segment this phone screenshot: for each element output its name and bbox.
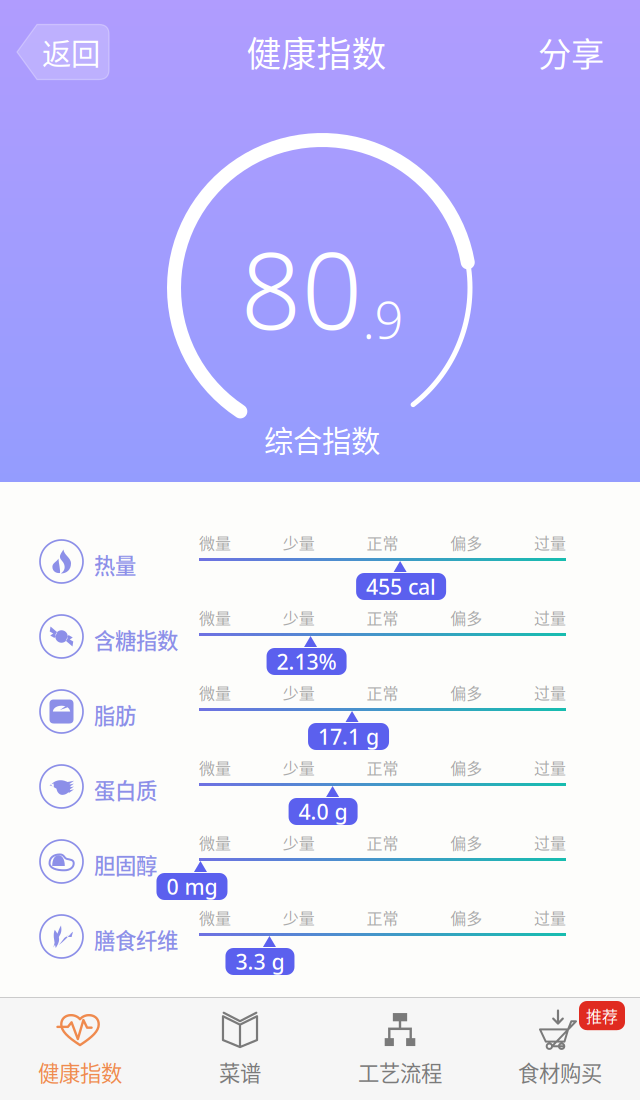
button[interactable]: 工艺流程 — [320, 998, 480, 1100]
staticText: 工艺流程 — [358, 1057, 442, 1087]
staticText: 偏多 — [450, 531, 482, 554]
staticText: 正常 — [366, 756, 398, 779]
staticText: 脂肪 — [94, 699, 136, 730]
staticText: 微量 — [199, 681, 231, 704]
staticText: 分享 — [538, 28, 604, 76]
staticText: 胆固醇 — [94, 849, 157, 880]
staticText: 4.0 g — [299, 797, 348, 826]
staticText: 偏多 — [450, 681, 482, 704]
staticText: 菜谱 — [219, 1057, 261, 1087]
staticText: 过量 — [534, 606, 566, 629]
staticText: 过量 — [534, 906, 566, 929]
staticText: 过量 — [534, 756, 566, 779]
staticText: 正常 — [366, 906, 398, 929]
staticText: 偏多 — [450, 756, 482, 779]
staticText: 正常 — [366, 681, 398, 704]
staticText: 455 cal — [366, 572, 436, 601]
staticText: 过量 — [534, 831, 566, 854]
staticText: 80 — [240, 217, 362, 359]
staticText: 少量 — [283, 531, 315, 554]
staticText: 微量 — [199, 531, 231, 554]
staticText: .9 — [362, 285, 403, 353]
staticText: 健康指数 — [38, 1057, 122, 1087]
staticText: 少量 — [283, 681, 315, 704]
staticText: 微量 — [199, 831, 231, 854]
staticText: 偏多 — [450, 831, 482, 854]
staticText: 偏多 — [450, 606, 482, 629]
staticText: 0 mg — [166, 872, 217, 901]
staticText: 食材购买 — [518, 1057, 602, 1087]
staticText: 热量 — [94, 549, 136, 580]
button[interactable]: 菜谱 — [160, 998, 320, 1100]
staticText: 偏多 — [450, 906, 482, 929]
staticText: 过量 — [534, 681, 566, 704]
staticText: 少量 — [283, 831, 315, 854]
staticText: 过量 — [534, 531, 566, 554]
staticText: 少量 — [283, 906, 315, 929]
staticText: 蛋白质 — [94, 774, 157, 805]
staticText: 推荐 — [586, 1004, 618, 1027]
staticText: 2.13% — [277, 647, 337, 676]
staticText: 少量 — [283, 606, 315, 629]
staticText: 正常 — [366, 531, 398, 554]
button[interactable]: 分享 — [524, 18, 618, 86]
staticText: 综合指数 — [264, 418, 380, 460]
button[interactable]: 健康指数 — [0, 998, 160, 1100]
staticText: 微量 — [199, 756, 231, 779]
button[interactable]: 返回 — [17, 24, 109, 79]
staticText: 返回 — [42, 31, 100, 73]
staticText: 正常 — [366, 831, 398, 854]
staticText: 膳食纤维 — [94, 924, 178, 955]
staticText: 微量 — [199, 606, 231, 629]
staticText: 3.3 g — [235, 947, 284, 976]
staticText: 健康指数 — [246, 27, 386, 77]
staticText: 正常 — [366, 606, 398, 629]
staticText: 含糖指数 — [94, 624, 178, 655]
button[interactable]: 食材购买 — [480, 998, 640, 1100]
staticText: 微量 — [199, 906, 231, 929]
staticText: 17.1 g — [318, 722, 379, 751]
staticText: 少量 — [283, 756, 315, 779]
